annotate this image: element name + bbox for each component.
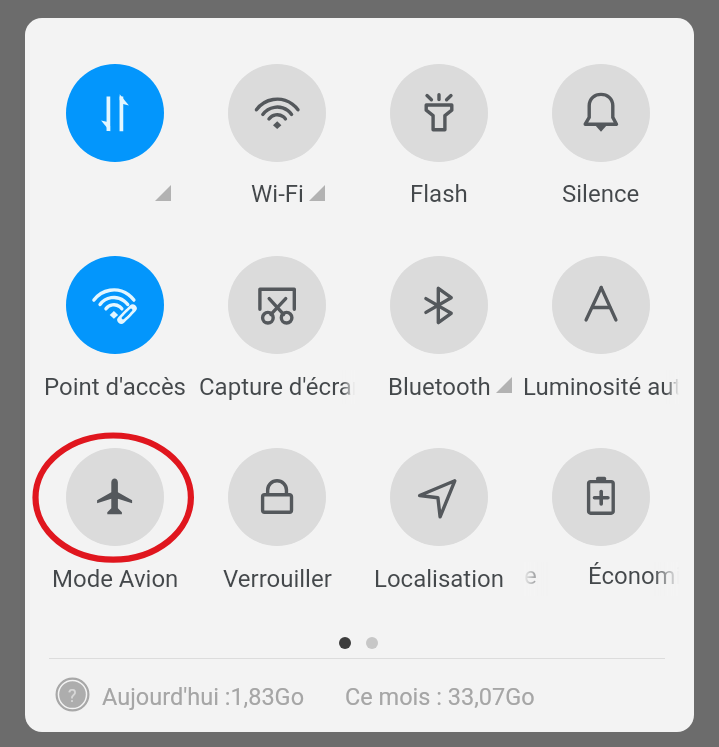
button[interactable]: Luminosité automatique — [552, 256, 650, 354]
staticText: Économiseur de batterie — [588, 562, 679, 590]
staticText: e — [524, 562, 537, 590]
button[interactable]: Silence — [552, 64, 650, 162]
staticText: Mode Avion — [52, 565, 179, 593]
staticText: Bluetooth — [388, 373, 491, 401]
staticText: Capture d'écran — [199, 373, 355, 401]
staticText: Verrouiller — [223, 565, 332, 593]
button[interactable]: Verrouiller — [228, 448, 326, 546]
staticText: Point d'accès — [44, 373, 187, 401]
other: Aide — [56, 678, 89, 711]
button[interactable]: Bluetooth — [390, 256, 488, 354]
button[interactable]: Point d'accès — [66, 256, 164, 354]
button[interactable]: Flash — [390, 64, 488, 162]
staticText: ? — [68, 685, 77, 706]
button[interactable]: Économiseur de batterie — [552, 448, 650, 546]
staticText: Silence — [562, 180, 640, 208]
button[interactable]: Mode Avion — [66, 448, 164, 546]
button[interactable]: Localisation — [390, 448, 488, 546]
staticText: Aujourd'hui :1,83Go — [102, 683, 305, 711]
staticText: Ce mois : 33,07Go — [345, 683, 535, 711]
staticText: Flash — [410, 180, 468, 208]
button[interactable]: Wi-Fi — [228, 64, 326, 162]
staticText: Wi-Fi — [251, 180, 304, 208]
button[interactable]: Capture d'écran — [228, 256, 326, 354]
button[interactable]: Données mobiles — [66, 64, 164, 162]
staticText: Localisation — [374, 565, 504, 593]
staticText: Luminosité automatique — [523, 373, 679, 401]
